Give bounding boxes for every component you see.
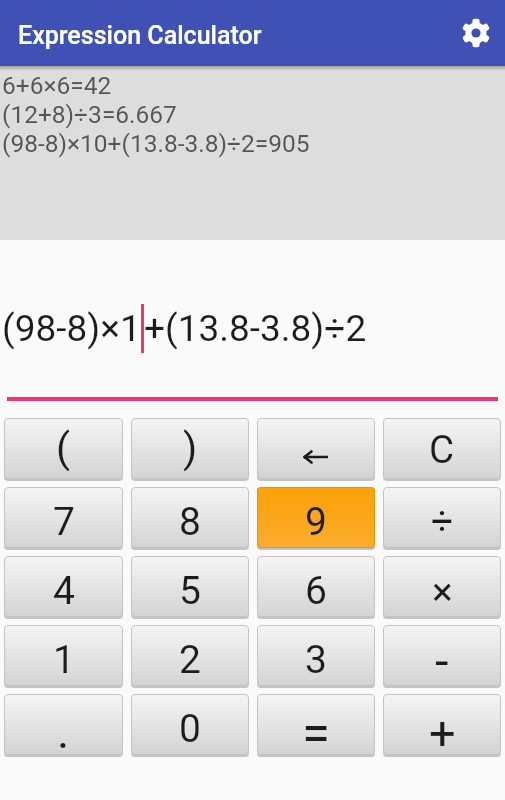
button[interactable]: = [257,694,375,755]
button[interactable] [459,16,493,50]
button[interactable]: + [383,694,501,755]
button[interactable]: 5 [131,556,249,617]
staticText: 2 [179,637,201,683]
staticText: 7 [53,499,75,545]
staticText: 0 [179,706,201,752]
staticText: ÷ [431,498,454,544]
staticText: × [432,569,453,615]
staticText: 1 [53,637,75,683]
staticText: = [302,704,330,755]
staticText: 4 [53,568,75,614]
button[interactable]: 9 [257,487,375,548]
button[interactable]: C [383,418,501,479]
staticText: Expression Calculator [18,21,262,50]
staticText: (12+8)÷3=6.667 [2,100,177,129]
button[interactable]: 2 [131,625,249,686]
staticText: ( [56,424,71,472]
button[interactable]: 3 [257,625,375,686]
staticText: (98-8)×1 [2,307,141,350]
staticText: 3 [305,637,327,683]
staticText: C [429,427,455,472]
button[interactable]: 1 [4,625,123,686]
staticText: ) [183,424,198,472]
button[interactable]: - [383,625,501,686]
staticText: (98-8)×10+(13.8-3.8)÷2=905 [2,129,310,158]
button[interactable]: 6 [257,556,375,617]
staticText: 6+6×6=42 [2,71,112,100]
staticText: 5 [179,568,201,614]
button[interactable]: . [4,694,123,755]
button[interactable]: (98-8)×1 [0,240,505,397]
staticText: 9 [305,499,327,545]
staticText: . [57,704,70,755]
staticText: 6 [305,568,327,614]
button[interactable] [257,418,375,479]
staticText: - [435,633,449,686]
button[interactable]: 0 [131,694,249,755]
button[interactable]: ( [4,418,123,479]
button[interactable]: 8 [131,487,249,548]
staticText: 8 [179,499,201,545]
button[interactable]: 4 [4,556,123,617]
staticText: +(13.8-3.8)÷2 [144,307,367,350]
staticText: + [429,705,456,755]
button[interactable]: × [383,556,501,617]
button[interactable]: 7 [4,487,123,548]
button[interactable]: ÷ [383,487,501,548]
button[interactable]: ) [131,418,249,479]
